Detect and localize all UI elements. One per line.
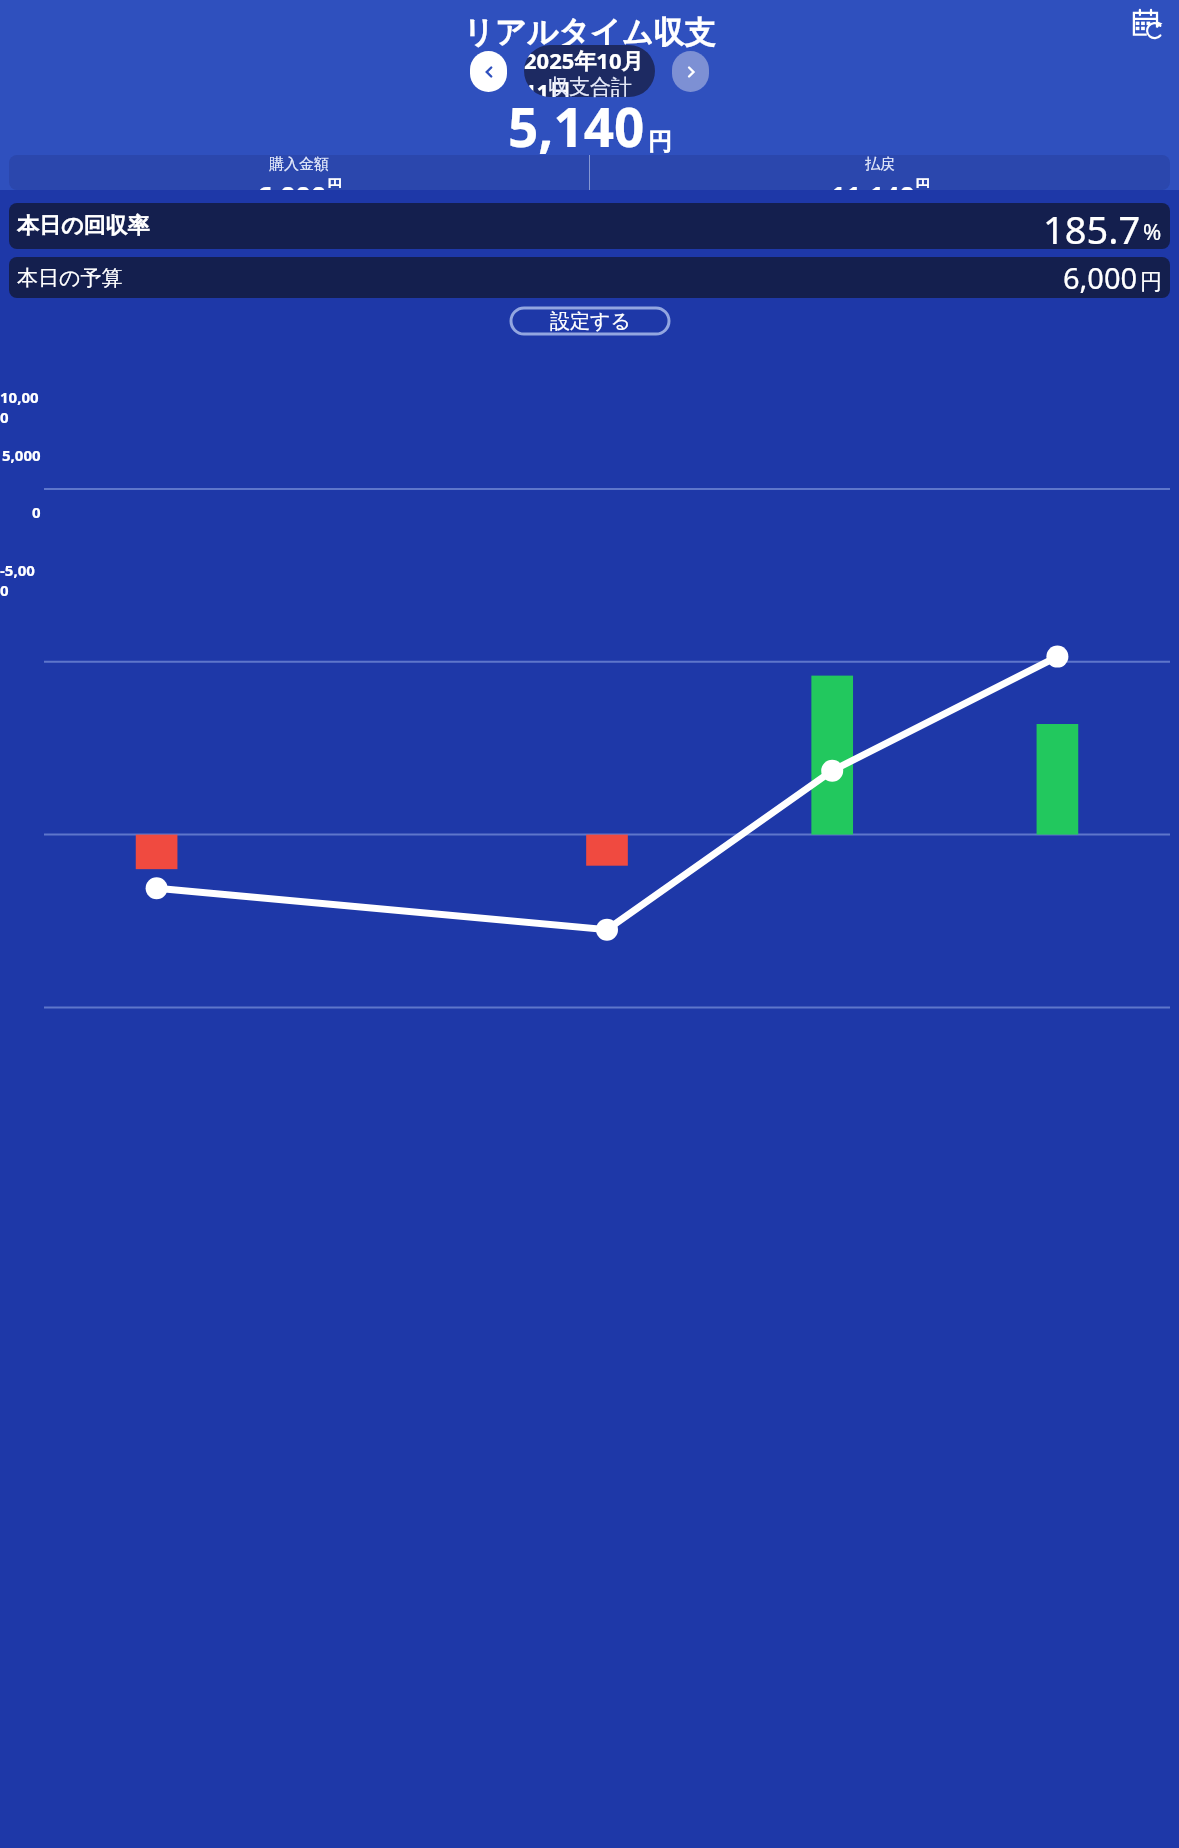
staticText: 本日の予算 xyxy=(17,265,123,291)
staticText: 円 xyxy=(648,127,672,157)
staticText: 円 xyxy=(915,177,930,188)
staticText: 払戻 xyxy=(865,155,895,174)
staticText: 185.7 xyxy=(1043,203,1141,249)
button[interactable]: Previous day xyxy=(470,51,507,92)
staticText: 本日の回収率 xyxy=(17,212,150,240)
staticText: 円 xyxy=(327,177,342,188)
staticText: 5,000 xyxy=(2,445,41,465)
staticText: 収支合計 xyxy=(548,74,632,100)
staticText: 購入金額 xyxy=(269,155,329,174)
staticText: 6,000 xyxy=(257,177,327,190)
staticText: 円 xyxy=(1140,268,1162,296)
staticText: 10,000 xyxy=(0,387,41,427)
button[interactable]: 本日の予算 xyxy=(9,257,1170,298)
staticText: 6,000 xyxy=(1063,258,1138,297)
button[interactable]: 2025年10月11日 xyxy=(524,45,655,97)
staticText: 2025年10月11日 xyxy=(524,45,655,97)
button[interactable]: Next day xyxy=(672,51,709,92)
staticText: 11,140 xyxy=(830,177,915,190)
staticText: リアルタイム収支 xyxy=(463,13,716,52)
button[interactable]: 設定する xyxy=(511,308,669,334)
staticText: 5,140 xyxy=(508,90,645,162)
staticText: 0 xyxy=(32,502,41,522)
button[interactable]: Refresh calendar xyxy=(1127,3,1169,45)
staticText: -5,000 xyxy=(0,560,41,600)
button[interactable]: 本日の回収率 xyxy=(9,203,1170,249)
staticText: 設定する xyxy=(550,309,631,334)
staticText: % xyxy=(1143,216,1162,246)
